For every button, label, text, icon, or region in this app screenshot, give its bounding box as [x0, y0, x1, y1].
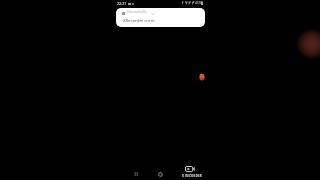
button[interactable]: Recording controls — [199, 73, 205, 81]
staticText: XRecorder corre — [123, 18, 155, 24]
staticText: · 43s — [140, 10, 147, 14]
button[interactable]: Home — [154, 168, 166, 180]
staticText: 22:21 — [117, 1, 127, 6]
staticText: XRecorder — [127, 10, 142, 14]
staticText: 43% — [195, 1, 202, 5]
staticText: X RECORDER — [180, 174, 204, 178]
button[interactable]: Recent apps — [130, 168, 142, 180]
button[interactable]: XRecorder — [116, 8, 205, 27]
